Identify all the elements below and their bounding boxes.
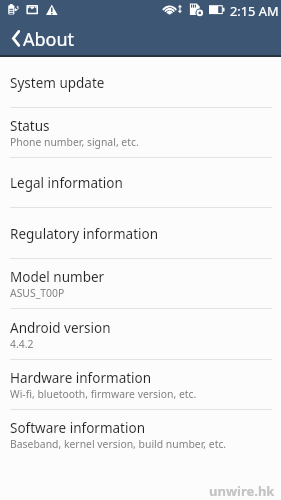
staticText: Baseband, kernel version, build number, … <box>10 437 227 451</box>
staticText: Regulatory information <box>10 225 159 243</box>
staticText: Software information <box>10 419 145 437</box>
button[interactable]: Software information <box>10 410 271 460</box>
button[interactable]: Status <box>0 108 281 158</box>
staticText: Status <box>10 117 50 135</box>
button[interactable]: Model number <box>0 259 281 309</box>
staticText: Hardware information <box>10 369 152 387</box>
staticText: 4.4.2 <box>10 337 34 351</box>
staticText: Model number <box>10 268 105 286</box>
staticText: About <box>23 27 75 52</box>
staticText: 2:15 AM <box>230 2 279 19</box>
other: Navigate up <box>0 22 22 55</box>
staticText: unwire.hk <box>209 482 275 500</box>
button[interactable]: Regulatory information <box>0 208 281 259</box>
button[interactable]: Navigate up <box>0 22 281 55</box>
button[interactable]: Hardware information <box>0 360 281 410</box>
staticText: Legal information <box>10 174 123 192</box>
button[interactable]: Android version <box>0 309 281 360</box>
staticText: ASUS_T00P <box>10 286 65 300</box>
button[interactable]: Legal information <box>0 158 281 208</box>
staticText: Android version <box>10 319 111 337</box>
staticText: System update <box>10 74 105 92</box>
staticText: Phone number, signal, etc. <box>10 135 139 149</box>
button[interactable]: System update <box>0 57 281 108</box>
staticText: Wi-fi, bluetooth, firmware version, etc. <box>10 387 197 401</box>
